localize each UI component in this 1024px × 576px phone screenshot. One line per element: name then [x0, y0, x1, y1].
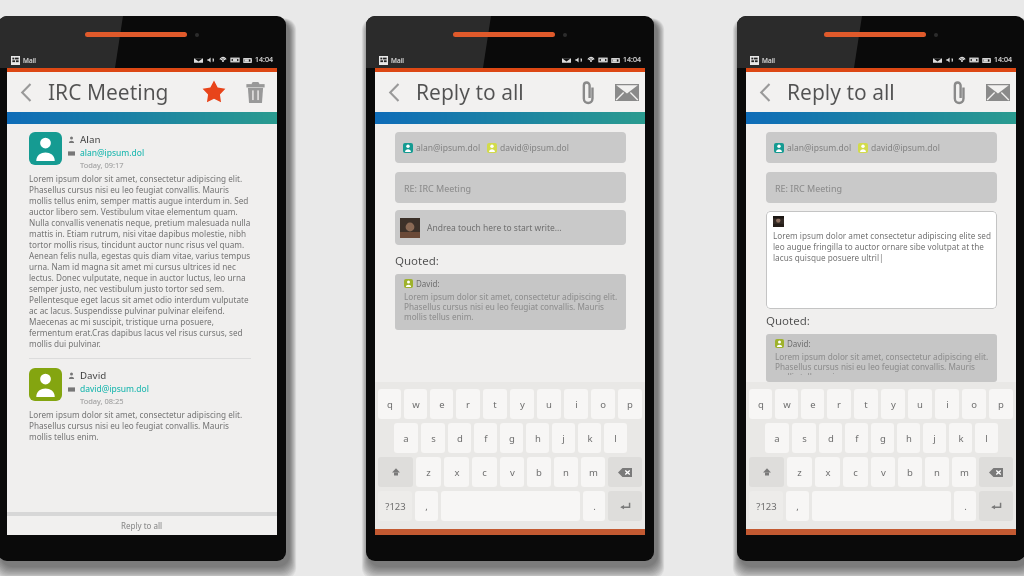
staticText: Today, 08:25 — [80, 396, 124, 406]
button[interactable] — [608, 491, 642, 521]
button[interactable]: x — [444, 457, 469, 487]
button[interactable]: o — [591, 389, 615, 419]
button[interactable]: f — [845, 423, 868, 453]
button[interactable]: t — [483, 389, 507, 419]
button[interactable]: h — [526, 423, 549, 453]
button[interactable]: Back — [752, 72, 778, 112]
button[interactable]: d — [448, 423, 471, 453]
button[interactable]: x — [815, 457, 840, 487]
button[interactable] — [979, 491, 1013, 521]
button[interactable]: y — [881, 389, 905, 419]
button[interactable]: n — [925, 457, 949, 487]
button[interactable]: k — [949, 423, 972, 453]
button[interactable]: Back — [381, 72, 407, 112]
button[interactable]: g — [500, 423, 523, 453]
staticText: f — [484, 432, 488, 445]
button[interactable]: t — [854, 389, 878, 419]
button[interactable]: l — [604, 423, 627, 453]
button[interactable]: n — [554, 457, 578, 487]
button[interactable]: g — [871, 423, 894, 453]
button[interactable]: m — [952, 457, 976, 487]
staticText: David: — [416, 278, 440, 289]
button[interactable]: Back — [13, 72, 39, 112]
button[interactable]: v — [500, 457, 524, 487]
button[interactable]: RE: IRC Meeting — [395, 172, 626, 203]
button[interactable]: Send — [981, 73, 1015, 111]
button[interactable]: k — [578, 423, 601, 453]
button[interactable]: s — [421, 423, 445, 453]
staticText: u — [917, 398, 923, 411]
button[interactable]: e — [430, 389, 453, 419]
button[interactable]: ?123 — [378, 491, 412, 521]
button[interactable]: , — [415, 491, 438, 521]
button[interactable]: z — [787, 457, 812, 487]
button[interactable]: . — [954, 491, 976, 521]
button[interactable]: Star — [197, 73, 231, 111]
button[interactable]: Delete — [238, 73, 272, 111]
button[interactable]: s — [792, 423, 816, 453]
button[interactable]: RE: IRC Meeting — [766, 172, 997, 203]
button[interactable]: a — [394, 423, 418, 453]
button[interactable]: l — [975, 423, 998, 453]
button[interactable]: c — [472, 457, 497, 487]
button[interactable]: p — [618, 389, 642, 419]
button[interactable]: alan@ipsum.dol — [395, 132, 626, 163]
button[interactable]: c — [843, 457, 868, 487]
button[interactable]: ?123 — [749, 491, 783, 521]
button[interactable]: p — [989, 389, 1013, 419]
button[interactable]: d — [819, 423, 842, 453]
button[interactable]: f — [474, 423, 497, 453]
staticText: Mail — [762, 56, 775, 65]
button[interactable]: j — [552, 423, 575, 453]
button[interactable]: m — [581, 457, 605, 487]
button[interactable]: u — [537, 389, 561, 419]
staticText: Quoted: — [766, 313, 810, 329]
button[interactable]: v — [871, 457, 895, 487]
button[interactable]: Attach file — [942, 73, 976, 111]
button[interactable]: q — [749, 389, 772, 419]
staticText: ?123 — [385, 500, 406, 513]
button[interactable]: o — [962, 389, 986, 419]
button[interactable]: r — [827, 389, 851, 419]
button[interactable]: w — [404, 389, 427, 419]
staticText: r — [466, 398, 470, 411]
button[interactable] — [608, 457, 642, 487]
staticText: 14:04 — [623, 55, 641, 65]
staticText: b — [907, 466, 913, 479]
button[interactable]: q — [378, 389, 401, 419]
button[interactable]: Andrea touch here to start write... — [395, 210, 626, 245]
staticText: d — [457, 432, 463, 445]
staticText: r — [837, 398, 841, 411]
staticText: Alan — [80, 133, 101, 146]
button[interactable]: j — [923, 423, 946, 453]
staticText: e — [439, 398, 445, 411]
button[interactable]: . — [583, 491, 605, 521]
button[interactable]: alan@ipsum.dol — [766, 132, 997, 163]
button[interactable]: Attach file — [571, 73, 605, 111]
staticText: z — [426, 466, 431, 479]
button[interactable]: , — [786, 491, 809, 521]
button[interactable] — [378, 457, 413, 487]
button[interactable]: e — [801, 389, 824, 419]
button[interactable]: z — [416, 457, 441, 487]
button[interactable] — [979, 457, 1013, 487]
button[interactable]: i — [935, 389, 959, 419]
button[interactable] — [749, 457, 784, 487]
button[interactable]: b — [898, 457, 922, 487]
button[interactable]: h — [897, 423, 920, 453]
button[interactable]: a — [765, 423, 789, 453]
button[interactable]: b — [527, 457, 551, 487]
staticText: h — [535, 432, 541, 445]
button[interactable]: u — [908, 389, 932, 419]
button[interactable]: w — [775, 389, 798, 419]
button[interactable]: Reply to all — [7, 516, 277, 535]
button[interactable]: Lorem ipsum dolor amet consectetur adipi… — [766, 211, 997, 309]
button[interactable]: Send — [610, 73, 644, 111]
button[interactable]: r — [456, 389, 480, 419]
button[interactable]: y — [510, 389, 534, 419]
staticText: . — [593, 500, 596, 513]
staticText: david@ipsum.dol — [500, 142, 569, 154]
button[interactable]: i — [564, 389, 588, 419]
